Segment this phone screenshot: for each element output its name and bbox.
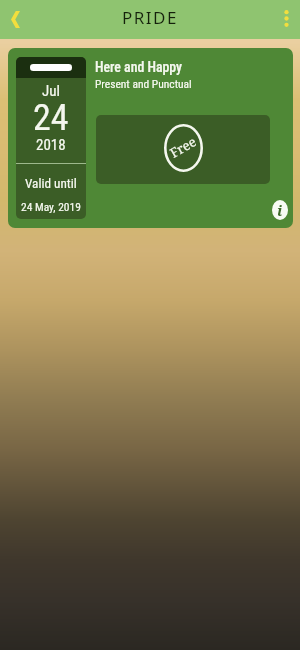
button[interactable]: Jul	[8, 48, 293, 228]
staticText: i	[277, 200, 283, 220]
staticText: Jul	[42, 82, 60, 100]
staticText: Here and Happy	[95, 59, 183, 75]
staticText: 2018	[36, 136, 66, 154]
staticText: Valid until	[25, 176, 77, 191]
staticText: PRIDE	[122, 6, 178, 29]
staticText: Present and Punctual	[95, 77, 192, 90]
staticText: 24	[33, 97, 69, 139]
button[interactable]: Info	[272, 200, 288, 220]
button[interactable]: More options	[270, 0, 300, 39]
staticText: 24 May, 2019	[21, 200, 81, 213]
button[interactable]: Back	[0, 0, 30, 39]
staticText: Free	[166, 132, 200, 162]
